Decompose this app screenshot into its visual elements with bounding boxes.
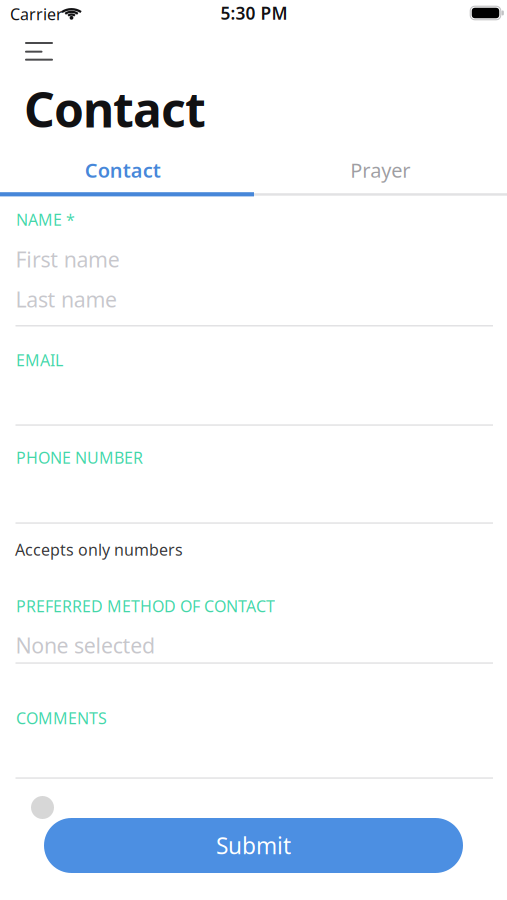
- button[interactable]: Contact: [0, 148, 253, 192]
- staticText: Last name: [15, 285, 117, 313]
- staticText: Carrier: [10, 3, 63, 25]
- button[interactable]: First name: [15, 237, 493, 277]
- staticText: COMMENTS: [16, 707, 107, 729]
- staticText: None selected: [15, 631, 155, 659]
- staticText: First name: [15, 245, 120, 273]
- button[interactable]: Submit: [44, 818, 463, 873]
- button[interactable]: Prayer: [253, 148, 507, 192]
- staticText: EMAIL: [16, 349, 63, 371]
- staticText: NAME *: [16, 209, 75, 230]
- staticText: PREFERRED METHOD OF CONTACT: [16, 595, 275, 617]
- staticText: Prayer: [350, 157, 410, 183]
- staticText: Submit: [216, 830, 291, 860]
- staticText: Contact: [85, 157, 161, 183]
- staticText: 5:30 PM: [220, 1, 287, 24]
- button[interactable]: None selected: [15, 631, 492, 669]
- staticText: Accepts only numbers: [15, 539, 183, 560]
- staticText: Contact: [24, 77, 206, 141]
- button[interactable]: Menu: [21, 38, 57, 68]
- button[interactable]: Last name: [15, 277, 493, 323]
- staticText: PHONE NUMBER: [16, 447, 143, 468]
